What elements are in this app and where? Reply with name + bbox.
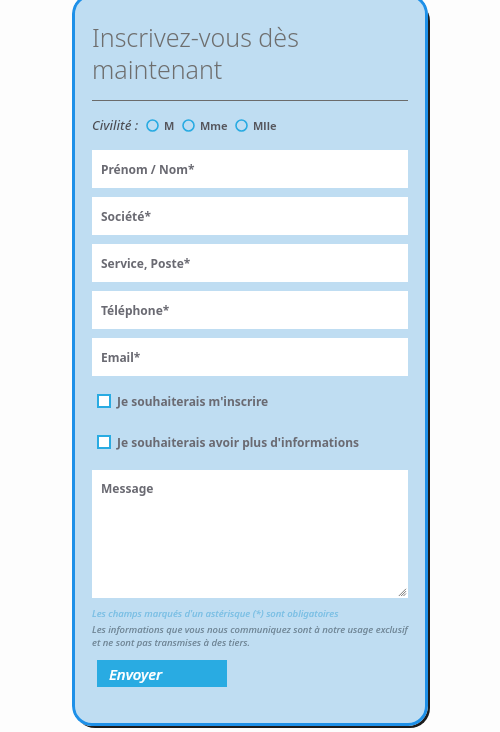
staticText: Mme (200, 118, 228, 133)
button[interactable]: Email* (92, 338, 408, 376)
button[interactable]: Mme (182, 118, 228, 133)
button[interactable]: Je souhaiterais avoir plus d'information… (97, 434, 408, 450)
staticText: Prénom / Nom* (101, 161, 195, 177)
staticText: Société* (101, 208, 151, 224)
staticText: Les champs marqués d'un astérisque (*) s… (92, 607, 339, 620)
button[interactable]: M (146, 118, 175, 133)
button[interactable]: Prénom / Nom* (92, 150, 408, 188)
button[interactable]: Je souhaiterais m'inscrire (97, 393, 408, 409)
button[interactable]: Envoyer (97, 660, 227, 687)
staticText: Message (101, 480, 154, 496)
button[interactable]: Message (92, 470, 408, 598)
staticText: Je souhaiterais m'inscrire (117, 393, 269, 409)
staticText: Je souhaiterais avoir plus d'information… (117, 434, 359, 450)
staticText: M (164, 118, 175, 133)
staticText: Téléphone* (101, 302, 170, 318)
staticText: Email* (101, 349, 141, 365)
staticText: Mlle (253, 118, 277, 133)
button[interactable]: Service, Poste* (92, 244, 408, 282)
button[interactable]: Téléphone* (92, 291, 408, 329)
staticText: Civilité : (92, 116, 139, 134)
staticText: Les informations que vous nous communiqu… (92, 623, 408, 649)
staticText: Inscrivez-vous dès (92, 20, 299, 54)
button[interactable]: Mlle (235, 118, 277, 133)
staticText: Service, Poste* (101, 255, 191, 271)
button[interactable]: Société* (92, 197, 408, 235)
staticText: Envoyer (109, 664, 163, 684)
staticText: maintenant (92, 52, 223, 86)
